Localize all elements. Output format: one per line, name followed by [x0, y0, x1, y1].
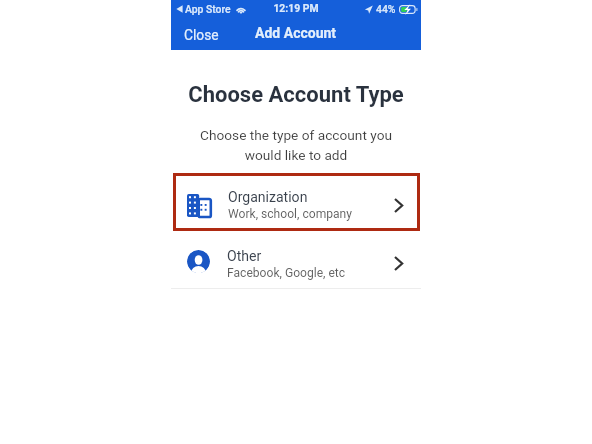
staticText: App Store — [185, 3, 231, 15]
other: Open — [394, 256, 403, 271]
staticText: 44% — [376, 3, 396, 15]
staticText: Add Account — [255, 25, 337, 41]
staticText: Other — [227, 248, 262, 264]
staticText: Close — [184, 27, 219, 43]
staticText: Facebook, Google, etc — [227, 266, 346, 280]
button[interactable]: Other — [171, 236, 421, 291]
button[interactable]: Organization — [171, 176, 421, 234]
other: Open — [394, 198, 403, 213]
staticText: 12:19 PM — [256, 2, 336, 14]
staticText: Organization — [228, 189, 308, 205]
button[interactable]: Close — [171, 21, 233, 50]
staticText: Choose Account Type — [171, 82, 421, 108]
staticText: Work, school, company — [228, 207, 353, 221]
staticText: Choose the type of account you would lik… — [171, 127, 421, 163]
